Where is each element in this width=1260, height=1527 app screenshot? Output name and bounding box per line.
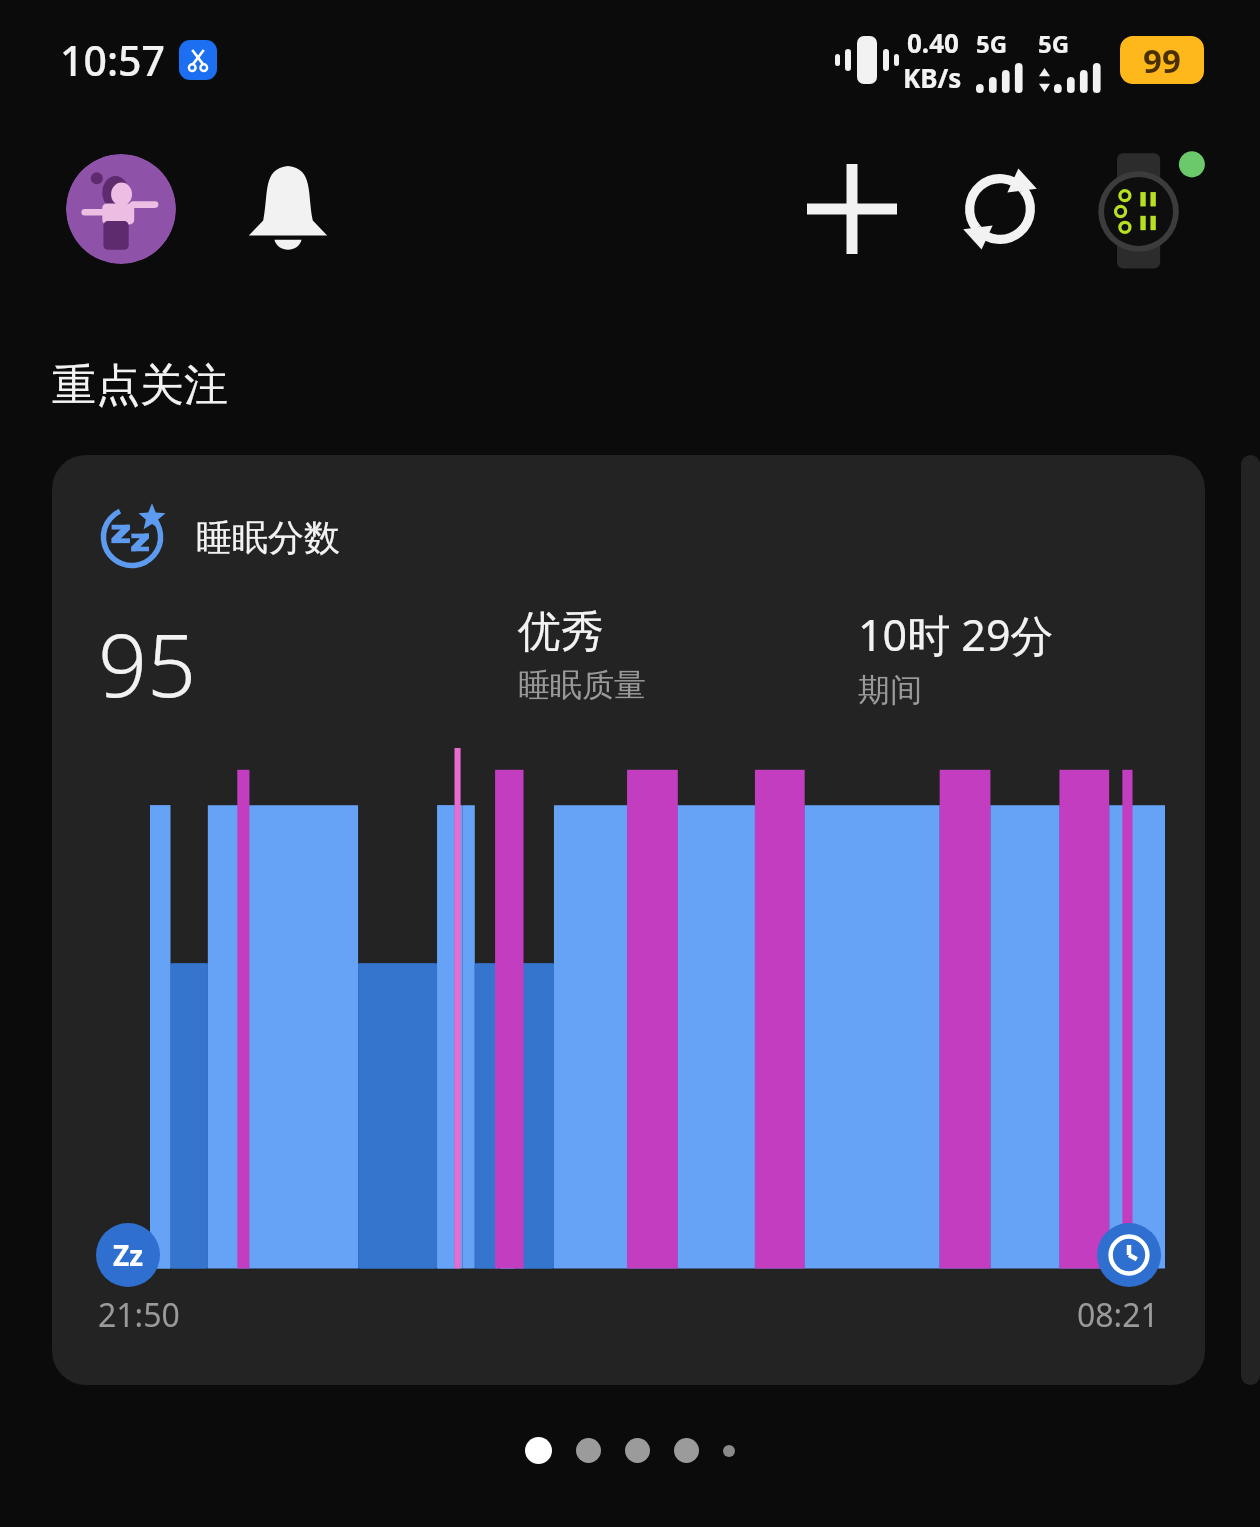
staticText: 08:21 [1077,1293,1159,1337]
staticText: 期间 [858,670,922,710]
button[interactable]: Wake time [1097,1223,1161,1287]
staticText: 95 [98,605,197,722]
staticText: 优秀 [518,605,604,659]
button[interactable]: Profile [66,154,176,264]
staticText: 10时 29分 [858,605,1054,664]
staticText: 5G [976,27,1008,60]
staticText: Zz [113,1236,144,1274]
staticText: 0.40 [907,25,959,60]
staticText: 10:57 [60,32,165,88]
button[interactable]: Notifications [236,157,340,261]
button[interactable]: Add [794,151,910,267]
staticText: 21:50 [98,1293,180,1337]
staticText: 重点关注 [52,358,228,413]
staticText: 5G [1038,27,1070,60]
staticText: 睡眠分数 [196,515,340,560]
button[interactable]: 睡眠分数 [52,455,1205,1385]
staticText: 睡眠质量 [518,665,646,705]
staticText: 99 [1143,38,1181,83]
button[interactable]: Sync [942,151,1058,267]
staticText: KB/s [903,60,962,95]
button[interactable]: Watch device [1084,147,1208,271]
button[interactable]: Sleep start [96,1223,160,1287]
